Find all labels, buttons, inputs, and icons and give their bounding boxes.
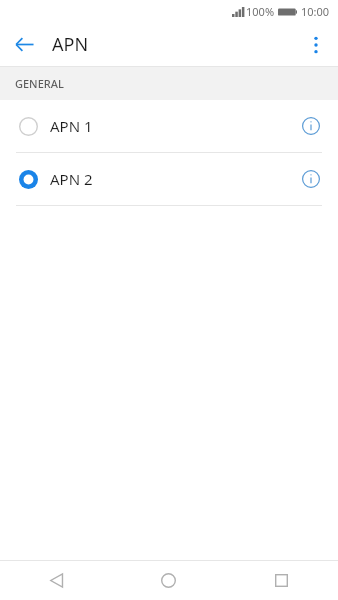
staticText: 100% [246, 4, 275, 19]
staticText: APN [52, 32, 89, 57]
staticText: 10:00 [301, 4, 330, 19]
staticText: APN 2 [50, 169, 93, 189]
button[interactable]: Home [112, 561, 225, 600]
button[interactable]: Details for APN 1 [294, 109, 328, 143]
button[interactable]: Details for APN 2 [294, 162, 328, 196]
button[interactable]: APN 1 [0, 100, 338, 152]
button[interactable]: Back [0, 22, 48, 67]
staticText: APN 1 [50, 116, 93, 136]
button[interactable]: APN 2 [0, 153, 338, 205]
button[interactable]: Back [0, 561, 112, 600]
button[interactable]: Recent apps [225, 561, 338, 600]
staticText: GENERAL [15, 76, 64, 91]
button[interactable]: More options [294, 23, 338, 67]
